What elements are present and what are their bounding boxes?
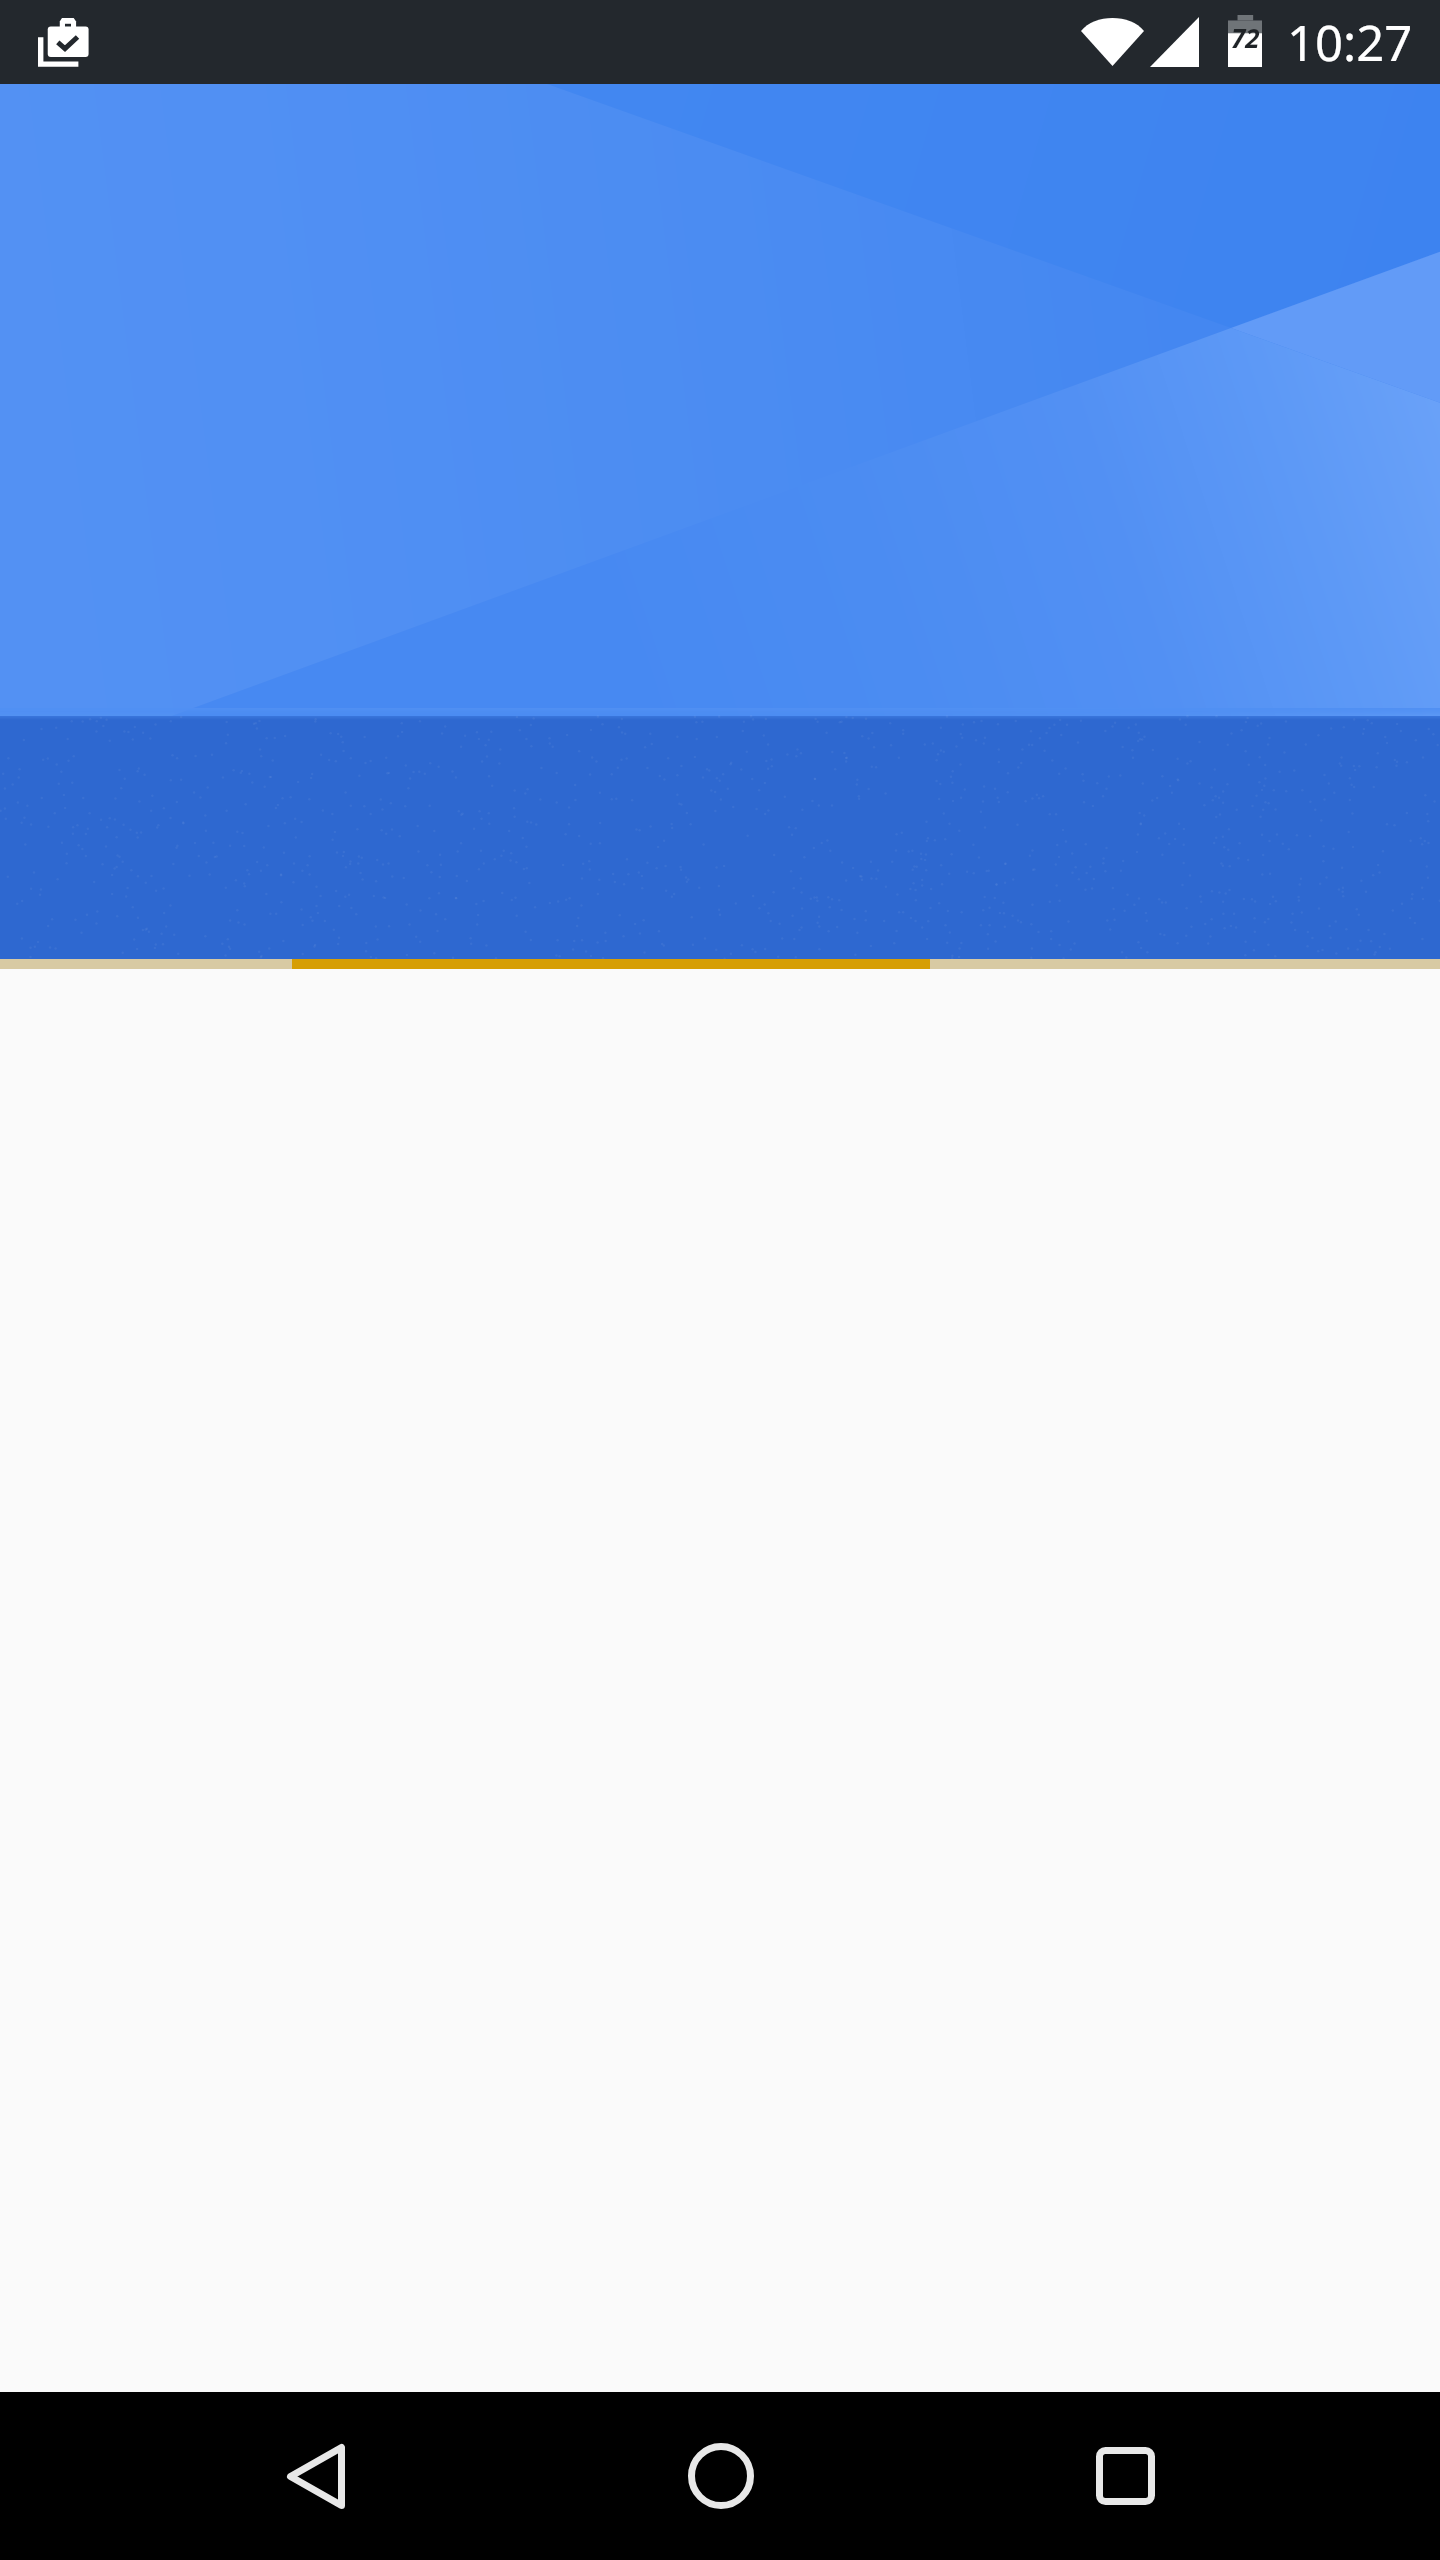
button[interactable]: Home <box>652 2404 789 2548</box>
staticText: 10:27 <box>1287 9 1413 76</box>
staticText: 72 <box>1231 20 1260 55</box>
button[interactable]: Recent apps <box>1057 2404 1194 2548</box>
button[interactable]: Back <box>247 2404 384 2548</box>
